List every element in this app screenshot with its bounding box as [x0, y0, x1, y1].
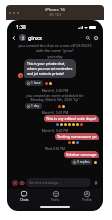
- staticText: March 6, 5:01 PM: [10, 110, 100, 114]
- staticText: Posts: [51, 198, 60, 202]
- button[interactable]: This is your private chat, where you can…: [24, 59, 76, 78]
- staticText: Wed 4:30 PM: [10, 146, 100, 150]
- staticText: Chats: [20, 198, 29, 202]
- staticText: iPhone 16: [45, 7, 65, 13]
- button[interactable]: 1 day: [25, 103, 42, 109]
- staticText: 1 day: [31, 104, 40, 108]
- staticText: you created an event scheduled for Monda…: [19, 93, 91, 102]
- button[interactable]: Search: [84, 34, 92, 42]
- button[interactable]: Chats: [8, 189, 40, 203]
- button[interactable]: Sidebar message: [64, 151, 99, 158]
- staticText: Testing namesauce yo: [57, 134, 97, 139]
- button[interactable]: Attach: [11, 179, 18, 186]
- staticText: This is my edited note dope!: [46, 116, 97, 121]
- staticText: ginxx: [28, 34, 42, 41]
- button[interactable]: Posts: [40, 189, 71, 203]
- staticText: This is your private chat, where you can…: [27, 61, 73, 76]
- staticText: Profile: [82, 198, 92, 202]
- staticText: Send a message...: [29, 180, 61, 185]
- staticText: yesterday: [10, 54, 100, 58]
- staticText: you created the chat as a one-off 03/03/…: [18, 43, 92, 53]
- button[interactable]: Profile: [71, 189, 102, 203]
- button[interactable]: Send a message...: [26, 178, 91, 187]
- button[interactable]: Back: [10, 34, 18, 42]
- button[interactable]: 3 replies: [71, 159, 92, 165]
- staticText: 1 hour: [31, 81, 41, 85]
- staticText: March 6, 5:02 PM: [10, 128, 100, 132]
- button[interactable]: Voice message: [92, 179, 99, 186]
- button[interactable]: This is my edited note dope!: [44, 115, 99, 122]
- staticText: March 6, 5:00 PM: [10, 88, 100, 92]
- staticText: Sidebar message: [66, 152, 97, 157]
- button[interactable]: 1 hour: [25, 80, 43, 86]
- button[interactable]: Info: [92, 34, 100, 42]
- staticText: 1:38: [16, 24, 26, 31]
- button[interactable]: Camera: [18, 179, 25, 186]
- staticText: iOS 18.3: [49, 13, 62, 17]
- button[interactable]: Testing namesauce yo: [55, 133, 99, 140]
- staticText: 3 replies: [77, 160, 90, 164]
